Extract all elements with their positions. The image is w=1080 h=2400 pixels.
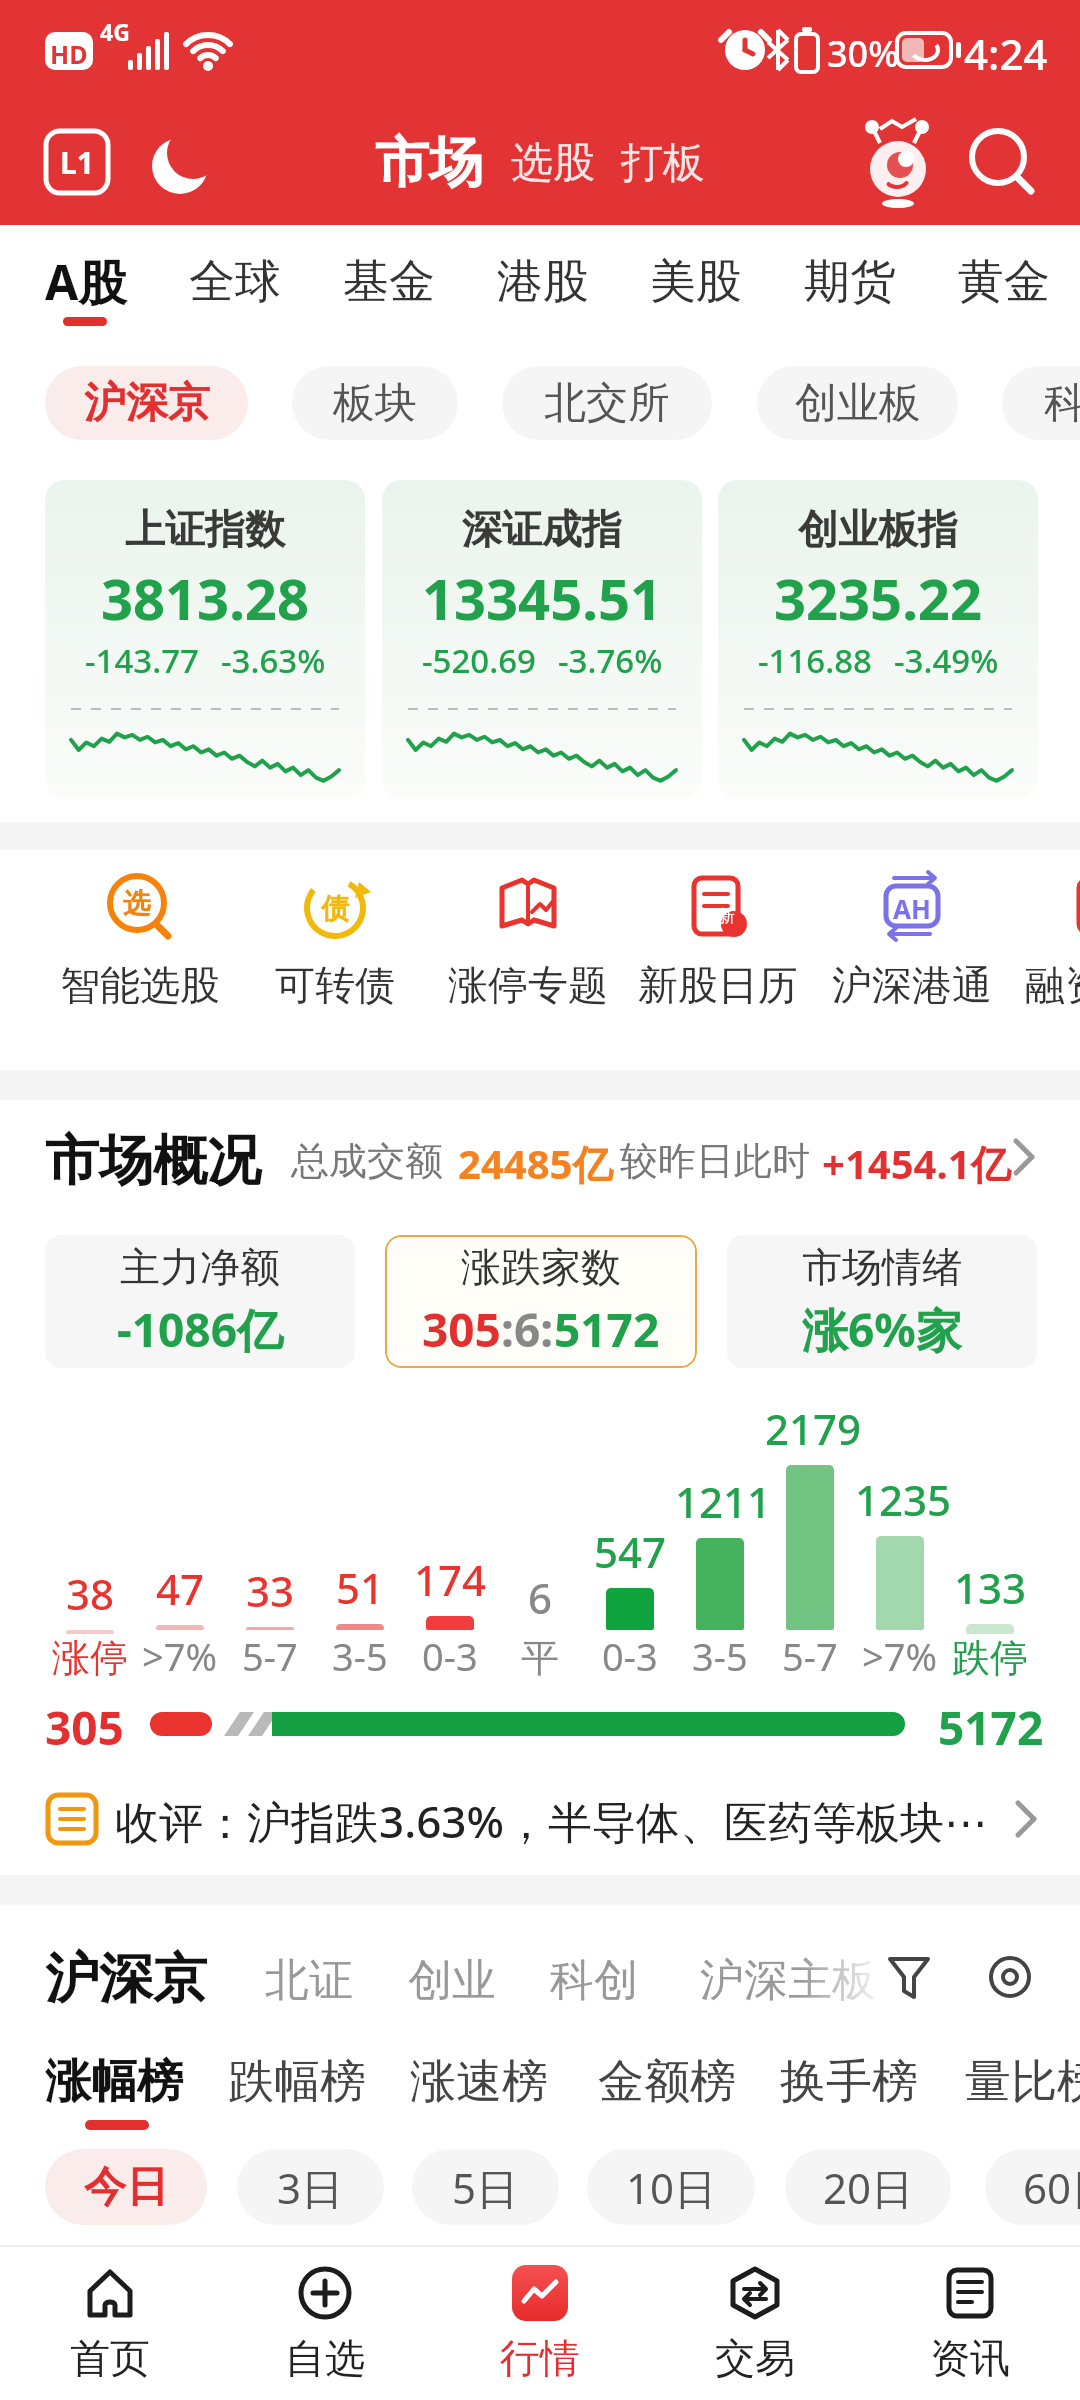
button[interactable]: 主力净额 [45, 1235, 355, 1368]
staticText: 0-3 [602, 1630, 658, 1682]
button[interactable]: 北证 [265, 1953, 353, 2008]
button[interactable]: 60日 [985, 2149, 1080, 2225]
button[interactable]: 美股 [650, 253, 742, 311]
staticText: 债 [321, 891, 349, 926]
staticText: 行情 [500, 2333, 580, 2383]
button[interactable]: 市场 [375, 129, 483, 197]
button[interactable]: 行情 [450, 2245, 630, 2400]
staticText: 3-5 [332, 1630, 388, 1682]
staticText: 20日 [823, 2159, 914, 2216]
staticText: 133 [954, 1559, 1027, 1616]
button[interactable]: 换手榜 [780, 2053, 918, 2111]
button[interactable]: 打板 [621, 137, 705, 190]
staticText: 5-7 [242, 1630, 298, 1682]
staticText: 首页 [70, 2333, 150, 2383]
staticText: 547 [594, 1523, 667, 1580]
button[interactable]: 新 [623, 850, 813, 1070]
button[interactable]: 涨停专题 [433, 850, 623, 1070]
staticText: 3-5 [692, 1630, 748, 1682]
button[interactable]: 涨速榜 [410, 2053, 548, 2111]
button[interactable]: 创业板 [757, 366, 958, 440]
button[interactable]: 自选 [235, 2245, 415, 2400]
staticText: 3235.22 [774, 560, 982, 636]
button[interactable]: 涨跌家数 [385, 1235, 697, 1368]
button[interactable]: 3日 [237, 2149, 384, 2225]
staticText: 24485亿 [458, 1136, 613, 1191]
button[interactable]: 债 [240, 850, 430, 1070]
button[interactable]: 融资融券 [1010, 850, 1080, 1070]
staticText: -1086亿 [117, 1298, 283, 1361]
staticText: 33 [246, 1562, 295, 1619]
button[interactable]: 板块 [292, 366, 458, 440]
button[interactable]: 今日 [45, 2149, 207, 2225]
button[interactable]: 沪深主板 [700, 1953, 876, 2008]
button[interactable]: 金额榜 [598, 2053, 736, 2111]
button[interactable]: 基金 [343, 253, 435, 311]
button[interactable]: 创业 [408, 1953, 496, 2008]
button[interactable]: 科创板 [1002, 366, 1080, 440]
button[interactable]: 沪深京 [45, 366, 248, 440]
button[interactable]: 科创 [550, 1953, 638, 2008]
button[interactable]: 黄金 [958, 253, 1050, 311]
button[interactable]: A股 [45, 249, 127, 315]
button[interactable]: AH [817, 850, 1007, 1070]
button[interactable]: 5日 [412, 2149, 559, 2225]
button[interactable] [888, 1957, 932, 2001]
staticText: :6: [501, 1298, 554, 1361]
staticText: 交易 [715, 2333, 795, 2383]
button[interactable]: 北交所 [502, 366, 712, 440]
staticText: 自选 [285, 2333, 365, 2383]
staticText: L1 [60, 142, 94, 183]
staticText: 13345.51 [422, 560, 662, 636]
staticText: 1211 [675, 1473, 765, 1530]
staticText: 创业板 [795, 377, 921, 430]
button[interactable]: 20日 [785, 2149, 951, 2225]
button[interactable]: 首页 [20, 2245, 200, 2400]
button[interactable]: 市场概况 [0, 1100, 1080, 1212]
button[interactable]: 交易 [665, 2245, 845, 2400]
staticText: 沪深京 [84, 377, 210, 430]
button[interactable]: 量比榜 [965, 2053, 1080, 2111]
button[interactable]: 全球 [189, 253, 281, 311]
button[interactable]: 10日 [587, 2149, 755, 2225]
button[interactable]: 收评：沪指跌3.63%，半导体、医药等板块⋯ [0, 1765, 1080, 1875]
staticText: 创业板指 [798, 504, 958, 554]
staticText: 市场概况 [45, 1127, 261, 1195]
staticText: 4:24 [964, 25, 1048, 82]
button[interactable]: L1 [46, 131, 108, 193]
staticText: 47 [156, 1560, 205, 1617]
button[interactable]: 资讯 [880, 2245, 1060, 2400]
staticText: 4G [100, 16, 130, 47]
staticText: 沪深港通 [832, 960, 992, 1010]
staticText: AH [893, 891, 931, 926]
button[interactable]: 沪深京 [45, 1945, 207, 2013]
button[interactable]: 创业板指 [718, 480, 1038, 798]
staticText: 305 [45, 1696, 124, 1759]
button[interactable] [988, 1955, 1032, 1999]
staticText: 涨停专题 [448, 960, 608, 1010]
staticText: 涨跌家数 [461, 1242, 621, 1292]
staticText: 10日 [626, 2159, 717, 2216]
button[interactable] [148, 128, 216, 196]
button[interactable]: 跌幅榜 [228, 2053, 366, 2111]
staticText: HD [50, 37, 88, 71]
staticText: 主力净额 [120, 1242, 280, 1292]
button[interactable]: 深证成指 [382, 480, 702, 798]
button[interactable]: 期货 [804, 253, 896, 311]
staticText: -520.69 [422, 638, 536, 683]
staticText: 174 [414, 1551, 487, 1608]
button[interactable]: 市场情绪 [727, 1235, 1037, 1368]
staticText: 资讯 [930, 2333, 1010, 2383]
button[interactable]: 涨幅榜 [45, 2053, 183, 2111]
button[interactable]: 选 [45, 850, 235, 1070]
staticText: 市场情绪 [802, 1242, 962, 1292]
staticText: 板块 [333, 377, 417, 430]
staticText: 可转债 [275, 960, 395, 1010]
staticText: -116.88 [758, 638, 872, 683]
button[interactable] [860, 125, 935, 200]
staticText: 3日 [277, 2159, 344, 2216]
button[interactable]: 港股 [497, 253, 589, 311]
button[interactable] [965, 125, 1040, 200]
button[interactable]: 上证指数 [45, 480, 365, 798]
button[interactable]: 选股 [511, 137, 595, 190]
